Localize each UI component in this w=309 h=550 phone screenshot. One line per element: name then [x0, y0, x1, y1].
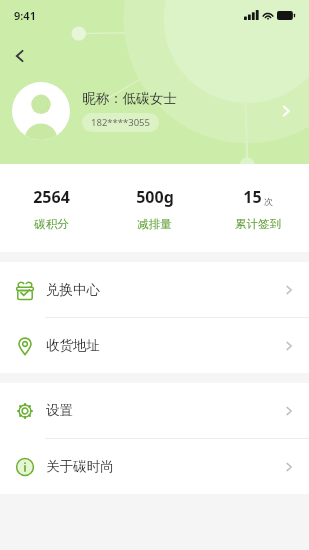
- staticText: 次: [264, 196, 273, 207]
- staticText: 减排量: [137, 217, 172, 231]
- staticText: 收货地址: [46, 337, 100, 354]
- staticText: 累计签到: [235, 217, 281, 231]
- staticText: 兑换中心: [46, 281, 100, 298]
- staticText: 182****3055: [91, 116, 150, 129]
- staticText: 500g: [136, 186, 174, 208]
- staticText: 关于碳时尚: [46, 458, 114, 475]
- button[interactable]: Back: [4, 40, 36, 72]
- button[interactable]: 设置: [0, 383, 309, 438]
- button[interactable]: 昵称：低碳女士: [0, 76, 309, 146]
- button[interactable]: 2564: [0, 186, 103, 231]
- button[interactable]: 500g: [103, 186, 206, 231]
- button[interactable]: 兑换中心: [0, 262, 309, 317]
- staticText: 设置: [46, 402, 73, 419]
- button[interactable]: 15: [206, 186, 309, 231]
- staticText: 2564: [33, 186, 70, 208]
- button[interactable]: 收货地址: [0, 318, 309, 373]
- button[interactable]: 关于碳时尚: [0, 439, 309, 494]
- staticText: 昵称：低碳女士: [82, 90, 177, 107]
- staticText: 碳积分: [34, 217, 69, 231]
- staticText: 9:41: [14, 8, 36, 23]
- staticText: 15: [243, 186, 262, 208]
